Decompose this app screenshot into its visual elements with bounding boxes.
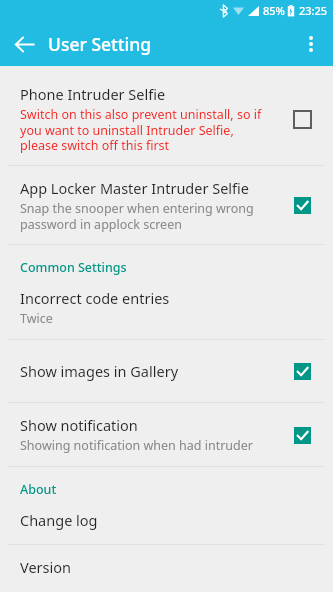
button[interactable]: App Locker Master Intruder Selfie bbox=[0, 166, 333, 244]
button[interactable]: Checked bbox=[285, 354, 319, 388]
button[interactable]: Back bbox=[4, 24, 44, 64]
staticText: 85% bbox=[263, 3, 285, 18]
button[interactable]: Version bbox=[0, 545, 333, 592]
button[interactable]: Change log bbox=[0, 506, 333, 544]
staticText: Showing notification when had intruder bbox=[20, 437, 253, 454]
staticText: Show images in Gallery bbox=[20, 361, 179, 381]
staticText: About bbox=[20, 481, 57, 498]
staticText: Version bbox=[20, 557, 71, 577]
button[interactable]: Phone Intruder Selfie bbox=[0, 74, 333, 165]
button[interactable]: Show notification bbox=[0, 403, 333, 466]
button[interactable]: Unchecked bbox=[285, 102, 319, 136]
staticText: Phone Intruder Selfie bbox=[20, 84, 166, 104]
staticText: User Setting bbox=[48, 32, 152, 56]
staticText: Snap the snooper when entering wrong pas… bbox=[20, 200, 275, 232]
staticText: Incorrect code entries bbox=[20, 288, 170, 308]
staticText: Twice bbox=[20, 310, 53, 327]
staticText: Show notification bbox=[20, 415, 138, 435]
staticText: Common Settings bbox=[20, 259, 127, 276]
button[interactable]: Incorrect code entries bbox=[0, 284, 333, 339]
staticText: Switch on this also prevent uninstall, s… bbox=[20, 106, 275, 153]
button[interactable]: Checked bbox=[285, 188, 319, 222]
button[interactable]: Checked bbox=[285, 418, 319, 452]
staticText: App Locker Master Intruder Selfie bbox=[20, 178, 249, 198]
button[interactable]: More options bbox=[291, 24, 331, 64]
button[interactable]: Show images in Gallery bbox=[0, 340, 333, 402]
staticText: 23:25 bbox=[299, 3, 328, 18]
staticText: Change log bbox=[20, 510, 98, 530]
